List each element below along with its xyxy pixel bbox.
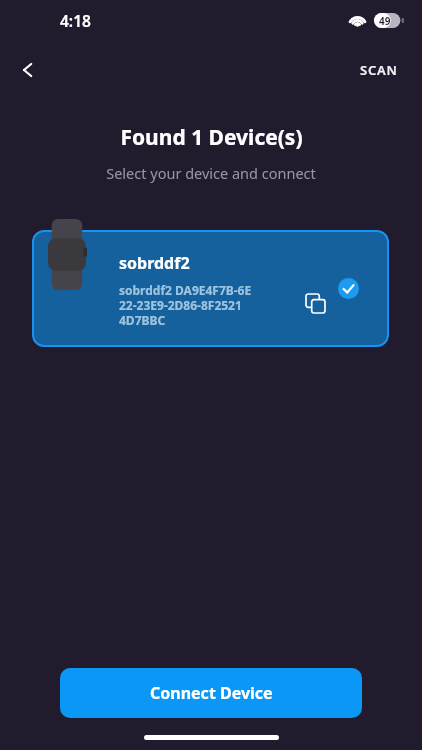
staticText: SCAN: [360, 61, 398, 79]
staticText: 49: [379, 14, 391, 28]
button[interactable]: Selected: [337, 277, 359, 299]
staticText: Connect Device: [150, 682, 273, 704]
staticText: sobrddf2: [119, 252, 190, 274]
staticText: Select your device and connect: [106, 163, 316, 183]
staticText: 4:18: [60, 10, 91, 31]
button[interactable]: Copy device id: [300, 288, 330, 318]
staticText: sobrddf2 DA9E4F7B-6E 22-23E9-2D86-8F2521…: [119, 282, 252, 328]
button[interactable]: sobrddf2: [32, 230, 389, 347]
staticText: Found 1 Device(s): [120, 123, 303, 152]
button[interactable]: SCAN: [356, 55, 402, 85]
button[interactable]: Connect Device: [60, 668, 362, 718]
button[interactable]: Back: [8, 50, 48, 90]
